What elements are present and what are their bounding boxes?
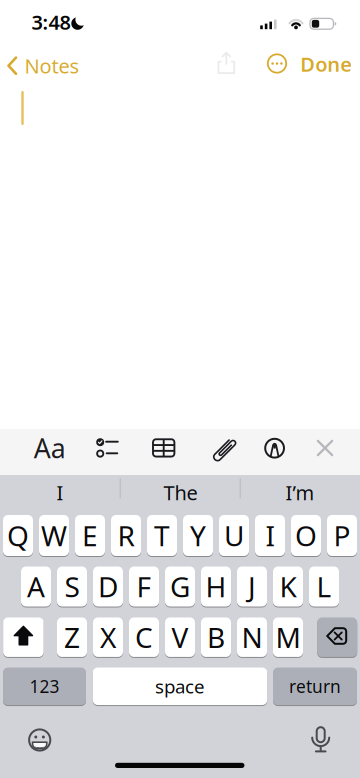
button[interactable]: I: [255, 515, 285, 556]
staticText: J: [248, 568, 256, 605]
button[interactable]: Checklist: [90, 437, 118, 459]
staticText: N: [241, 619, 262, 656]
button[interactable]: Attach: [210, 434, 240, 464]
button[interactable]: L: [309, 566, 339, 606]
button[interactable]: The: [125, 477, 235, 507]
button[interactable]: H: [201, 566, 231, 606]
button[interactable]: Share: [215, 52, 238, 75]
button[interactable]: space: [93, 667, 267, 705]
staticText: X: [100, 619, 116, 656]
staticText: H: [205, 568, 226, 605]
staticText: 123: [29, 675, 59, 698]
button[interactable]: Table: [152, 438, 175, 458]
button[interactable]: Format: [30, 431, 70, 465]
button[interactable]: R: [111, 515, 141, 556]
button[interactable]: I: [5, 477, 115, 507]
staticText: I’m: [285, 479, 314, 506]
staticText: E: [82, 517, 98, 554]
staticText: P: [333, 517, 350, 554]
staticText: I: [265, 517, 274, 554]
button[interactable]: C: [129, 617, 159, 657]
button[interactable]: 123: [3, 667, 86, 705]
button[interactable]: A: [21, 566, 51, 606]
button[interactable]: G: [165, 566, 195, 606]
staticText: U: [224, 517, 244, 554]
staticText: return: [289, 675, 341, 698]
button[interactable]: X: [93, 617, 123, 657]
staticText: Done: [300, 51, 352, 77]
button[interactable]: E: [75, 515, 105, 556]
button[interactable]: I’m: [245, 477, 355, 507]
button[interactable]: Done: [300, 51, 352, 77]
button[interactable]: Markup: [264, 438, 285, 459]
button[interactable]: T: [147, 515, 177, 556]
button[interactable]: Shift: [3, 617, 44, 657]
staticText: S: [64, 568, 79, 605]
staticText: Notes: [24, 52, 79, 79]
staticText: A: [27, 568, 45, 605]
staticText: The: [163, 479, 197, 506]
button[interactable]: K: [273, 566, 303, 606]
staticText: C: [135, 619, 153, 656]
staticText: space: [155, 674, 205, 699]
staticText: Z: [64, 619, 80, 656]
staticText: Y: [190, 517, 206, 554]
button[interactable]: P: [327, 515, 357, 556]
staticText: R: [117, 517, 134, 554]
staticText: B: [207, 619, 225, 656]
button[interactable]: N: [237, 617, 267, 657]
staticText: L: [316, 568, 331, 605]
staticText: K: [279, 568, 296, 605]
staticText: G: [170, 568, 190, 605]
button[interactable]: V: [165, 617, 195, 657]
staticText: F: [136, 568, 151, 605]
staticText: I: [56, 479, 63, 506]
button[interactable]: F: [129, 566, 159, 606]
button[interactable]: S: [57, 566, 87, 606]
staticText: W: [41, 517, 67, 554]
button[interactable]: U: [219, 515, 249, 556]
button[interactable]: W: [39, 515, 69, 556]
staticText: V: [171, 619, 188, 656]
button[interactable]: Delete: [317, 617, 357, 657]
staticText: D: [98, 568, 118, 605]
button[interactable]: Y: [183, 515, 213, 556]
button[interactable]: J: [237, 566, 267, 606]
staticText: O: [295, 517, 317, 554]
button[interactable]: Dictate: [311, 725, 331, 755]
staticText: Q: [7, 517, 29, 554]
button[interactable]: Emoji: [28, 728, 52, 752]
staticText: Aa: [34, 430, 66, 466]
button[interactable]: O: [291, 515, 321, 556]
button[interactable]: Dismiss keyboard: [317, 440, 333, 456]
button[interactable]: Q: [3, 515, 33, 556]
button[interactable]: More: [266, 52, 288, 74]
button[interactable]: Notes: [4, 56, 80, 77]
button[interactable]: M: [273, 617, 303, 657]
button[interactable]: B: [201, 617, 231, 657]
staticText: T: [154, 517, 170, 554]
button[interactable]: D: [93, 566, 123, 606]
button[interactable]: return: [273, 667, 357, 705]
button[interactable]: Z: [57, 617, 87, 657]
staticText: 3:48: [31, 9, 70, 35]
staticText: M: [275, 619, 300, 656]
